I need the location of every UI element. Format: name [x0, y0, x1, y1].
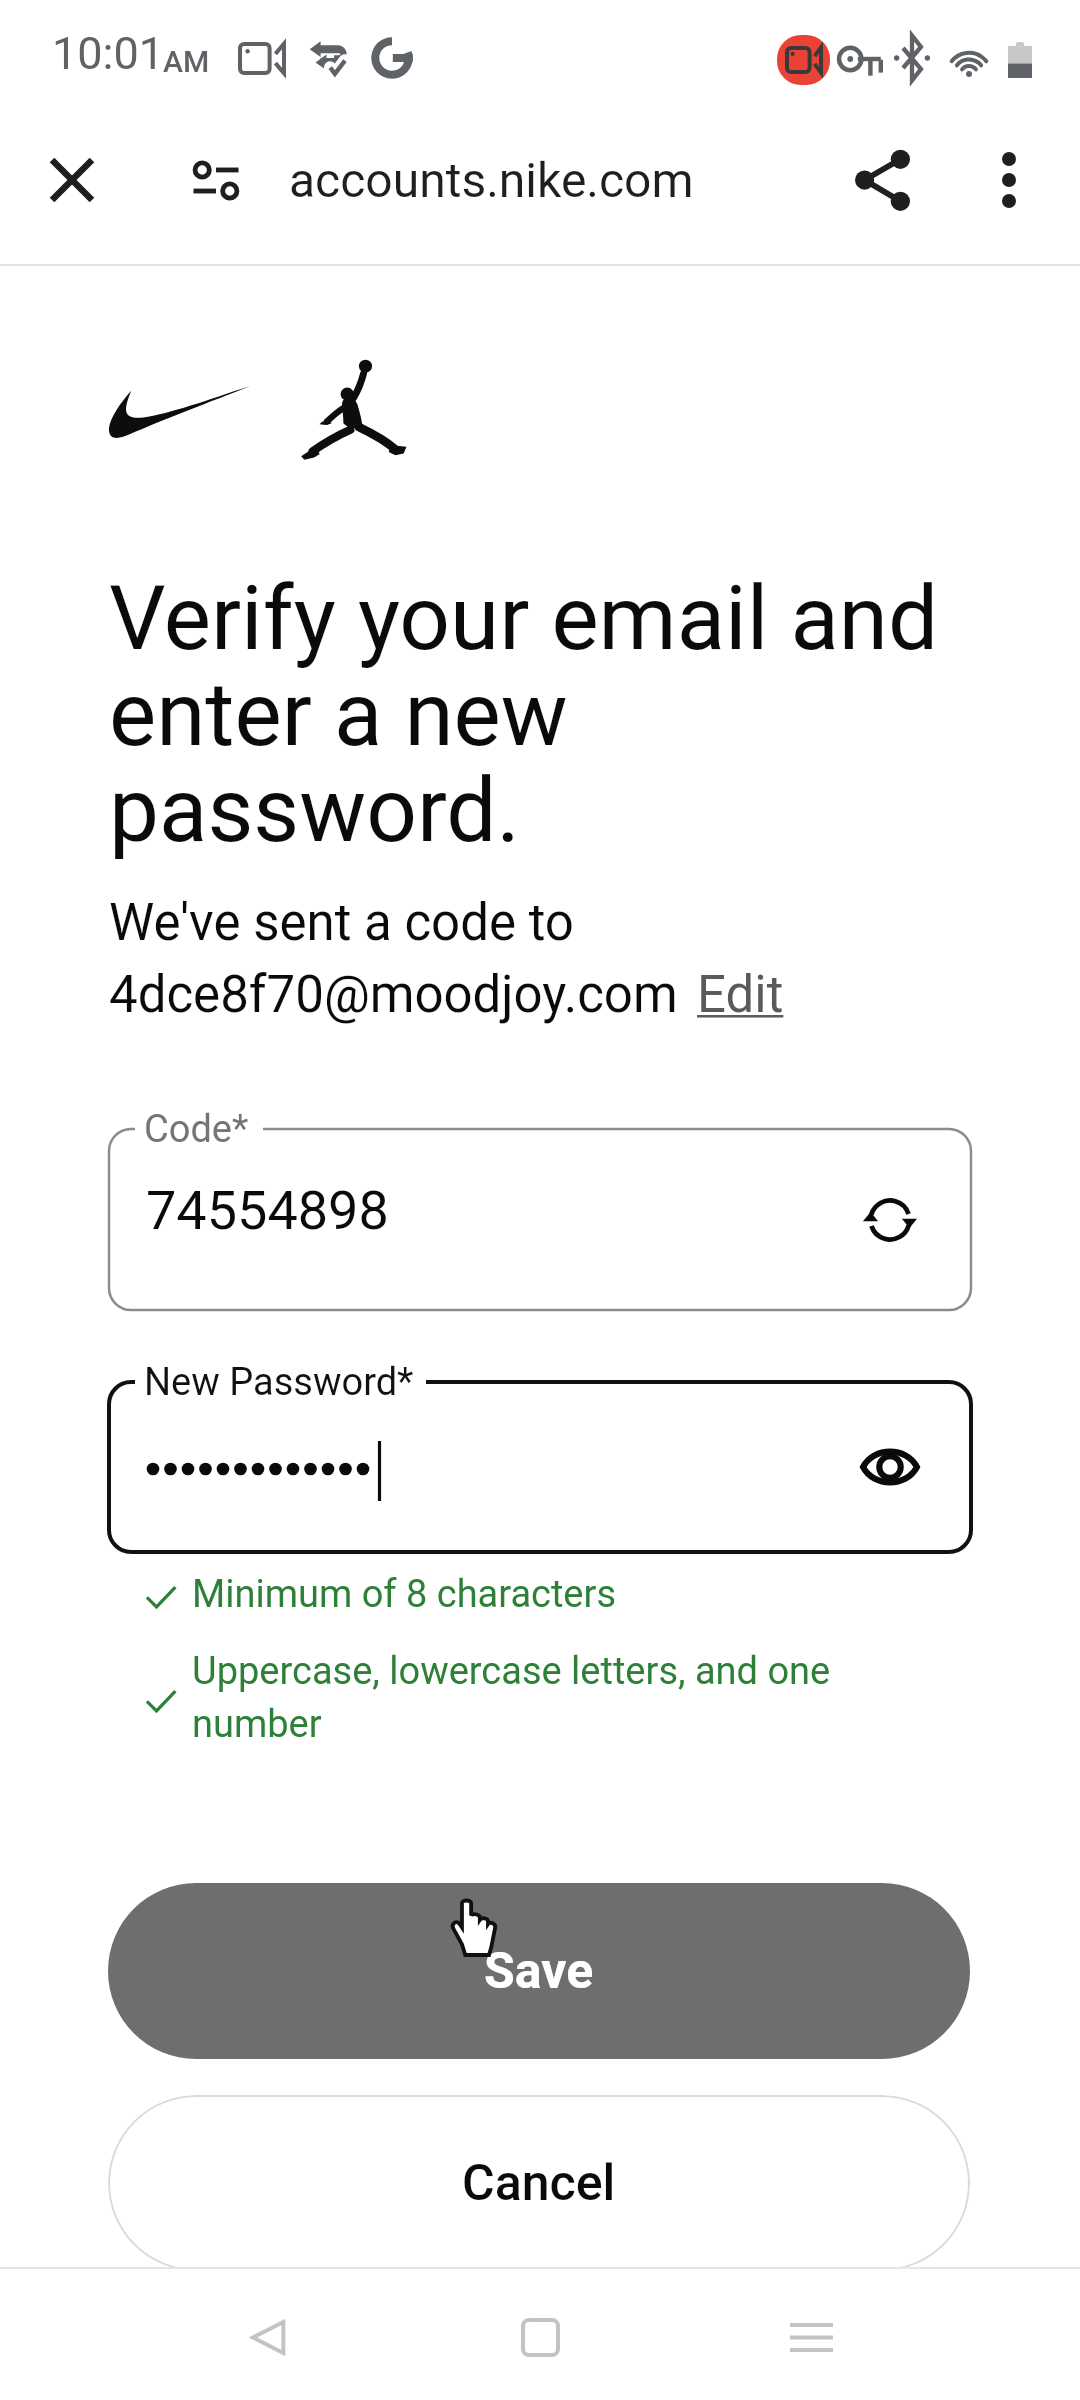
button[interactable]: Back	[178, 2274, 358, 2400]
staticText: 74554898	[146, 1179, 389, 1242]
staticText: Save	[484, 1942, 594, 2001]
button[interactable]: Close	[18, 126, 126, 234]
button[interactable]: More options	[955, 126, 1063, 234]
button[interactable]: Show password	[842, 1419, 938, 1515]
staticText: AM	[163, 44, 210, 79]
button[interactable]: Refresh code	[842, 1172, 938, 1268]
staticText: 10:01	[52, 27, 165, 80]
staticText: We've sent a code to	[109, 893, 574, 953]
staticText: New Password*	[144, 1360, 414, 1405]
button[interactable]: Cancel	[108, 2095, 970, 2271]
staticText: Minimum of 8 characters	[192, 1572, 617, 1617]
button[interactable]: Edit	[697, 965, 784, 1025]
staticText: accounts.nike.com	[289, 152, 694, 208]
button[interactable]: Recents	[721, 2274, 901, 2400]
button[interactable]: Page info	[166, 130, 266, 230]
button[interactable]: Home	[450, 2274, 630, 2400]
staticText: 4dce8f70@moodjoy.com	[109, 965, 678, 1025]
button[interactable]: Share	[828, 126, 936, 234]
staticText: Verify your email and enter a new passwo…	[109, 566, 954, 863]
staticText: Code*	[144, 1107, 249, 1152]
button[interactable]: Save	[108, 1883, 970, 2059]
staticText: Uppercase, lowercase letters, and one nu…	[192, 1649, 840, 1746]
staticText: Edit	[697, 965, 784, 1025]
staticText: Cancel	[462, 2154, 616, 2213]
